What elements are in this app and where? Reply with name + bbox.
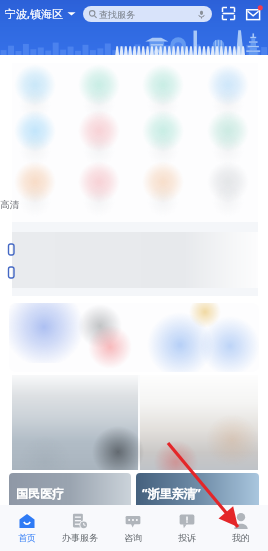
staticText: “浙里亲清” <box>142 485 201 501</box>
staticText: 宁波,镇海区 <box>5 6 64 21</box>
button[interactable]: Scan code <box>221 6 236 21</box>
staticText: 国民医疗 <box>16 486 64 501</box>
button[interactable]: 查找服务 <box>89 6 206 22</box>
staticText: 我的 <box>232 532 250 543</box>
staticText: 高清 <box>0 199 19 211</box>
button[interactable]: 宁波,镇海区 <box>5 6 76 21</box>
button[interactable]: “浙里亲清” <box>136 473 259 513</box>
button[interactable]: 咨询 <box>106 505 160 551</box>
staticText: 投诉 <box>178 532 196 543</box>
staticText: 咨询 <box>124 532 142 543</box>
other: Voice search <box>197 10 206 19</box>
staticText: 首页 <box>18 532 36 543</box>
button[interactable]: Messages <box>246 5 263 22</box>
staticText: 办事服务 <box>62 532 98 543</box>
button[interactable]: 我的 <box>214 505 268 551</box>
button[interactable]: 投诉 <box>160 505 214 551</box>
button[interactable]: 首页 <box>0 505 53 551</box>
button[interactable]: 国民医疗 <box>9 473 131 513</box>
button[interactable]: 办事服务 <box>53 505 106 551</box>
staticText: 查找服务 <box>99 9 135 20</box>
